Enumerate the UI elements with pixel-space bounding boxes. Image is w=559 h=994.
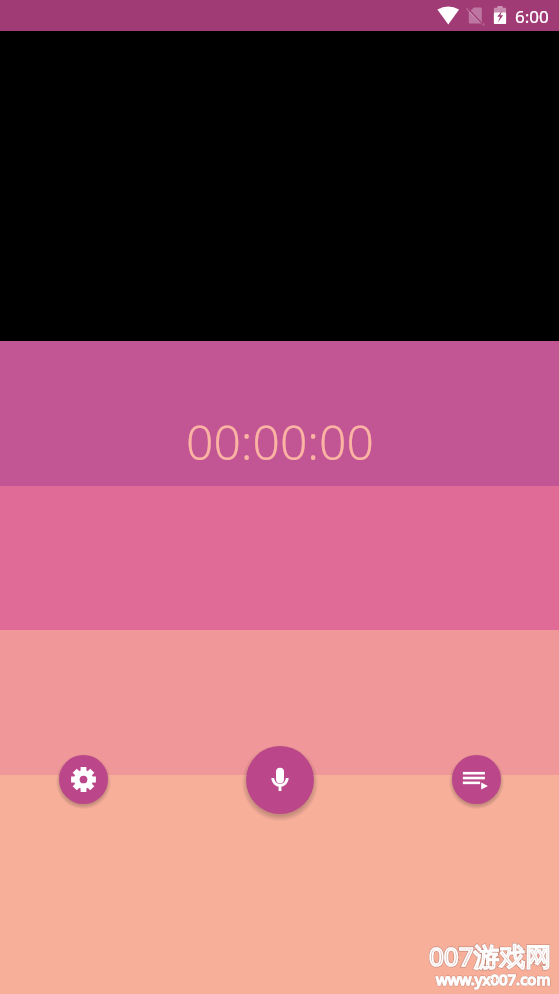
button[interactable]: Settings: [48, 744, 119, 815]
staticText: 007游戏网: [429, 938, 552, 974]
button[interactable]: Record: [231, 731, 329, 829]
staticText: 00:00:00: [186, 409, 374, 469]
button[interactable]: Recordings list: [441, 744, 512, 815]
staticText: www.yx007.com: [436, 969, 551, 989]
staticText: 007游戏网: [429, 938, 552, 974]
staticText: 6:00: [515, 5, 549, 28]
staticText: www.yx007.com: [436, 969, 551, 989]
